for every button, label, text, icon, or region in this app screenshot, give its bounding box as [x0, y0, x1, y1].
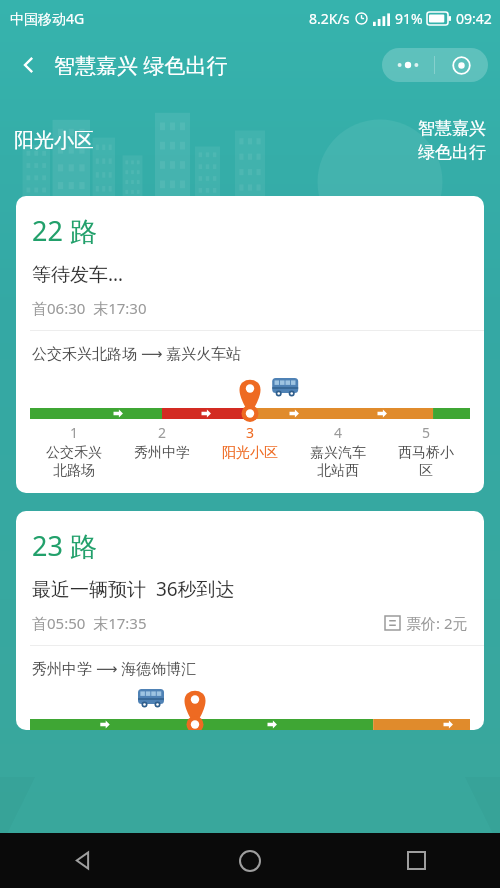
button[interactable]: 23 路: [16, 511, 484, 730]
button[interactable]: Home: [166, 833, 333, 888]
staticText: 中国移动4G: [10, 9, 85, 28]
staticText: 绿色出行: [418, 142, 486, 163]
staticText: 秀州中学 ⟶ 海德饰博汇: [32, 658, 197, 678]
staticText: 阳光小区: [222, 444, 278, 462]
staticText: 2: [158, 423, 167, 442]
staticText: 首05:50 末17:35: [32, 613, 147, 633]
button[interactable]: Close: [435, 48, 488, 82]
staticText: 最近一辆预计 36秒到达: [32, 576, 235, 602]
staticText: 91%: [395, 9, 423, 28]
staticText: 票价: 2元: [406, 613, 468, 633]
staticText: 23 路: [32, 527, 97, 564]
staticText: 22 路: [32, 212, 97, 249]
button[interactable]: Recents: [333, 833, 500, 888]
staticText: 4: [334, 423, 343, 442]
staticText: 秀州中学: [134, 444, 190, 462]
staticText: 1: [70, 423, 79, 442]
button[interactable]: 22 路: [16, 196, 484, 493]
staticText: 等待发车…: [32, 261, 124, 287]
button[interactable]: Back: [12, 48, 46, 82]
staticText: 8.2K/s: [309, 9, 350, 28]
staticText: 智慧嘉兴: [418, 118, 486, 139]
staticText: 5: [422, 423, 431, 442]
staticText: 3: [246, 423, 255, 442]
button[interactable]: Back: [0, 833, 166, 888]
button[interactable]: More: [382, 48, 434, 82]
staticText: 阳光小区: [14, 128, 94, 153]
staticText: 智慧嘉兴 绿色出行: [54, 51, 228, 80]
staticText: 西马桥小 区: [398, 444, 454, 479]
staticText: 公交禾兴北路场 ⟶ 嘉兴火车站: [32, 343, 242, 363]
staticText: 09:42: [456, 9, 492, 28]
staticText: 嘉兴汽车 北站西: [310, 444, 366, 479]
staticText: 公交禾兴 北路场: [46, 444, 102, 479]
staticText: 首06:30 末17:30: [32, 298, 147, 318]
